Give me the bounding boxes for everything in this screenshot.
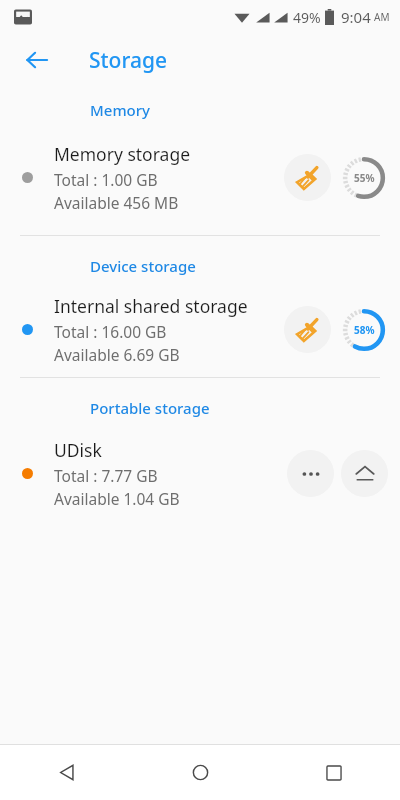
staticText: Memory storage (54, 142, 191, 166)
staticText: Available 6.69 GB (54, 344, 180, 365)
staticText: Available 1.04 GB (54, 488, 180, 509)
button[interactable]: More options (287, 450, 334, 497)
staticText: Memory (90, 100, 151, 120)
button[interactable]: Eject (341, 450, 388, 497)
staticText: Device storage (90, 256, 196, 276)
button[interactable]: Internal shared storage (0, 294, 400, 365)
button[interactable]: Storage usage 58 percent (338, 304, 390, 356)
staticText: 49% (293, 8, 321, 27)
staticText: Internal shared storage (54, 294, 248, 318)
button[interactable]: Back (0, 745, 134, 800)
staticText: AM (374, 10, 390, 24)
staticText: 55% (354, 171, 375, 185)
button[interactable]: Clean storage (284, 154, 331, 201)
button[interactable]: UDisk (0, 438, 400, 509)
button[interactable]: Memory storage (0, 142, 400, 213)
staticText: UDisk (54, 438, 102, 462)
button[interactable]: Storage usage 55 percent (338, 152, 390, 204)
staticText: 58% (354, 323, 375, 337)
button[interactable]: Back (13, 36, 61, 84)
staticText: 9:04 (341, 7, 371, 27)
button[interactable]: Recent apps (267, 745, 400, 800)
staticText: Storage (89, 46, 167, 75)
staticText: Portable storage (90, 398, 210, 418)
staticText: Total : 1.00 GB (54, 169, 158, 190)
staticText: Total : 7.77 GB (54, 465, 158, 486)
button[interactable]: Home (134, 745, 267, 800)
staticText: Available 456 MB (54, 192, 179, 213)
button[interactable]: Clean storage (284, 306, 331, 353)
staticText: Total : 16.00 GB (54, 321, 167, 342)
